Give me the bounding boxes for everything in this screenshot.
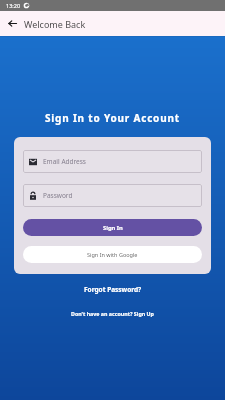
button[interactable]: Sign In with Google bbox=[23, 246, 202, 263]
button[interactable]: Email Address bbox=[23, 150, 202, 173]
button[interactable]: Sign In bbox=[23, 219, 202, 236]
staticText: Sign In bbox=[103, 224, 123, 232]
staticText: Sign In to Your Account bbox=[45, 111, 180, 125]
staticText: Welcome Back bbox=[24, 18, 86, 30]
button[interactable]: Back bbox=[6, 17, 19, 30]
staticText: Password bbox=[43, 191, 73, 200]
button[interactable]: Forgot Password? bbox=[84, 285, 142, 294]
button[interactable]: Password bbox=[23, 184, 202, 207]
button[interactable]: Don't have an account? Sign Up bbox=[71, 310, 154, 317]
staticText: Sign In with Google bbox=[87, 251, 138, 258]
staticText: Email Address bbox=[43, 157, 86, 166]
staticText: 13:20 bbox=[6, 2, 21, 9]
